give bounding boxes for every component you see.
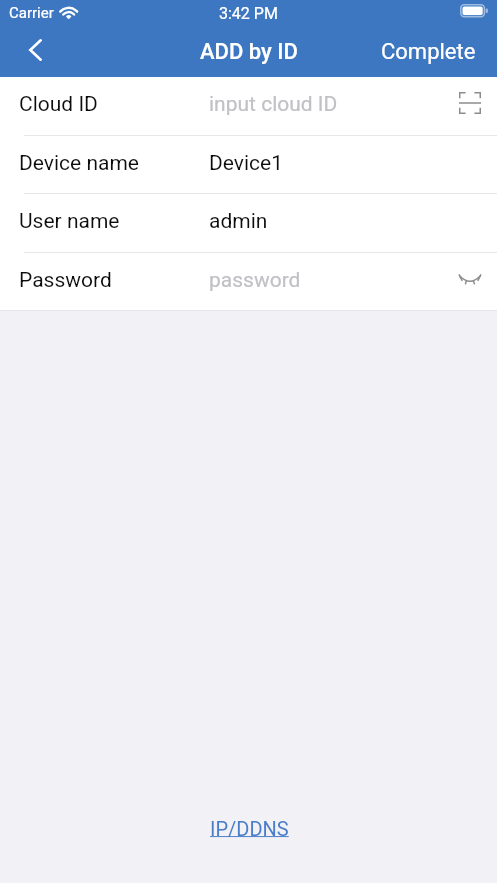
staticText: User name bbox=[19, 209, 120, 234]
staticText: ADD by ID bbox=[200, 39, 298, 65]
button[interactable]: Show password bbox=[450, 259, 490, 299]
button[interactable]: Complete bbox=[369, 31, 497, 73]
button[interactable]: User name bbox=[0, 194, 497, 253]
button[interactable]: IP/DDNS bbox=[210, 817, 289, 840]
button[interactable]: Back bbox=[14, 31, 56, 69]
button[interactable]: Password bbox=[0, 253, 497, 312]
staticText: admin bbox=[209, 209, 268, 234]
button[interactable]: Cloud ID bbox=[0, 77, 497, 136]
button[interactable]: Scan QR code bbox=[450, 83, 490, 123]
staticText: IP/DDNS bbox=[210, 817, 289, 840]
staticText: 3:42 PM bbox=[219, 4, 278, 23]
staticText: Cloud ID bbox=[19, 92, 98, 117]
staticText: input cloud ID bbox=[209, 92, 338, 117]
staticText: Device1 bbox=[209, 151, 283, 176]
staticText: Carrier bbox=[9, 4, 54, 22]
staticText: password bbox=[209, 268, 301, 293]
staticText: Password bbox=[19, 268, 112, 293]
staticText: Complete bbox=[381, 39, 476, 65]
button[interactable]: Device name bbox=[0, 136, 497, 195]
staticText: Device name bbox=[19, 151, 139, 176]
